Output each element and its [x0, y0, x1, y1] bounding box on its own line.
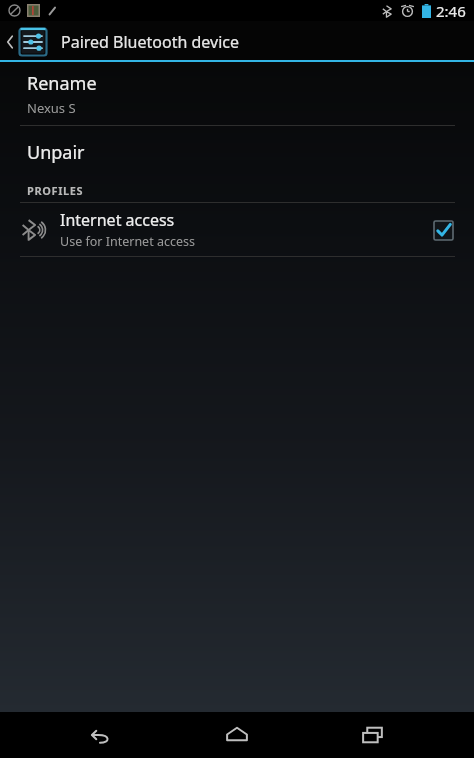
button[interactable]: Navigate up: [0, 21, 474, 62]
staticText: PROFILES: [27, 183, 84, 198]
button[interactable]: Use for Internet access: [426, 213, 460, 247]
staticText: Nexus S: [27, 99, 76, 117]
button[interactable]: Home: [210, 712, 264, 758]
staticText: Unpair: [27, 140, 85, 165]
button[interactable]: Back: [74, 712, 128, 758]
button[interactable]: Rename: [0, 62, 474, 125]
staticText: 2:46: [436, 1, 466, 21]
staticText: Use for Internet access: [60, 233, 195, 250]
staticText: Paired Bluetooth device: [61, 31, 240, 53]
button[interactable]: Recent apps: [346, 712, 400, 758]
button[interactable]: Unpair: [0, 126, 474, 179]
button[interactable]: Internet access: [0, 203, 474, 256]
staticText: Rename: [27, 71, 97, 96]
staticText: Internet access: [60, 209, 175, 231]
